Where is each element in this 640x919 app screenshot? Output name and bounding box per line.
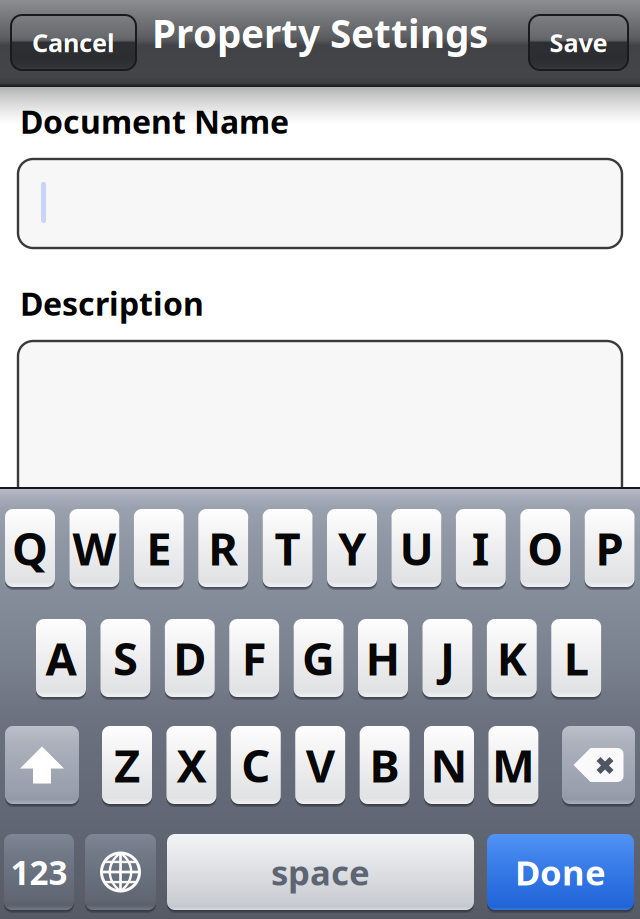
button[interactable]: Shift: [5, 726, 79, 804]
button[interactable]: V: [295, 726, 345, 804]
staticText: Save: [549, 26, 607, 59]
button[interactable]: T: [263, 509, 313, 587]
staticText: N: [430, 735, 467, 795]
staticText: Z: [114, 735, 140, 795]
staticText: space: [271, 849, 370, 895]
button[interactable]: Q: [5, 509, 55, 587]
button[interactable]: H: [358, 619, 408, 697]
button[interactable]: W: [69, 509, 119, 587]
button[interactable]: Y: [327, 509, 377, 587]
staticText: Cancel: [32, 26, 115, 59]
staticText: D: [173, 628, 206, 688]
staticText: H: [365, 628, 400, 688]
button[interactable]: C: [231, 726, 281, 804]
button[interactable]: Z: [102, 726, 152, 804]
staticText: 123: [10, 850, 67, 894]
staticText: R: [208, 518, 238, 578]
staticText: Property Settings: [152, 7, 488, 59]
staticText: B: [370, 735, 400, 795]
button[interactable]: Delete: [562, 726, 635, 804]
button[interactable]: M: [488, 726, 538, 804]
button[interactable]: Cancel: [11, 15, 136, 70]
staticText: I: [472, 518, 490, 578]
button[interactable]: S: [100, 619, 150, 697]
button[interactable]: I: [456, 509, 506, 587]
staticText: V: [306, 735, 335, 795]
button[interactable]: R: [198, 509, 248, 587]
staticText: K: [497, 628, 527, 688]
button[interactable]: Save: [529, 15, 628, 70]
staticText: Document Name: [20, 100, 289, 142]
button[interactable]: B: [360, 726, 410, 804]
button[interactable]: Done: [487, 834, 634, 910]
button[interactable]: F: [229, 619, 279, 697]
staticText: C: [241, 735, 270, 795]
button[interactable]: space: [167, 834, 474, 910]
staticText: Done: [515, 849, 606, 895]
staticText: E: [146, 518, 171, 578]
button[interactable]: L: [551, 619, 601, 697]
button[interactable]: K: [487, 619, 537, 697]
button[interactable]: O: [520, 509, 570, 587]
staticText: S: [113, 628, 138, 688]
button[interactable]: E: [134, 509, 184, 587]
button[interactable]: D: [165, 619, 215, 697]
staticText: L: [564, 628, 589, 688]
button[interactable]: Switch keyboard: [85, 834, 156, 910]
staticText: M: [492, 735, 535, 795]
staticText: X: [176, 735, 206, 795]
staticText: A: [45, 628, 76, 688]
button[interactable]: 123: [4, 834, 74, 910]
button[interactable]: G: [294, 619, 344, 697]
button[interactable]: X: [166, 726, 216, 804]
button[interactable]: J: [422, 619, 472, 697]
staticText: Q: [12, 518, 48, 578]
button[interactable]: U: [391, 509, 441, 587]
button[interactable]: A: [36, 619, 86, 697]
staticText: F: [242, 628, 267, 688]
staticText: Y: [338, 518, 366, 578]
staticText: Description: [20, 282, 204, 324]
staticText: P: [596, 518, 624, 578]
staticText: O: [527, 518, 563, 578]
staticText: T: [275, 518, 301, 578]
staticText: W: [72, 518, 116, 578]
staticText: G: [302, 628, 335, 688]
staticText: U: [399, 518, 433, 578]
staticText: J: [440, 628, 455, 688]
button[interactable]: P: [585, 509, 635, 587]
button[interactable]: N: [424, 726, 474, 804]
